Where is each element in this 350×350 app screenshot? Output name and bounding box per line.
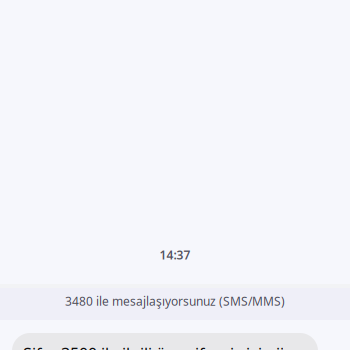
- button[interactable]: Şifre 3500 ile ilgili üye şifreniz icin …: [12, 333, 318, 350]
- staticText: 14:37: [159, 247, 190, 263]
- staticText: Şifre 3500 ile ilgili üye şifreniz icin …: [23, 343, 284, 350]
- staticText: 3480 ile mesajlaşıyorsunuz (SMS/MMS): [65, 293, 285, 309]
